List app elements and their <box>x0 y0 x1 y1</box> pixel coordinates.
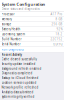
button[interactable]: Build Number <box>0 37 64 42</box>
button[interactable]: Memory <box>0 17 64 22</box>
staticText: Background refresh enabled <box>1 67 41 70</box>
staticText: Memory <box>1 18 11 21</box>
staticText: Build Number <box>1 38 21 41</box>
staticText: Location services updated <box>1 81 36 84</box>
staticText: Run Diagnostics <box>1 48 23 51</box>
staticText: Storage <box>1 23 11 26</box>
button[interactable]: Operating System <box>0 32 64 37</box>
staticText: A17 Pro <box>50 13 62 16</box>
button[interactable]: Processor <box>0 12 64 17</box>
button[interactable]: Run Diagnostics <box>0 47 64 52</box>
staticText: System integrity verified <box>1 95 34 98</box>
staticText: Network profile refreshed <box>1 86 38 89</box>
staticText: 22C152 <box>50 38 62 41</box>
staticText: Diagnostics completed <box>1 71 32 75</box>
staticText: Recent Activity <box>1 53 21 56</box>
staticText: Cache cleared successfully <box>1 57 36 61</box>
staticText: Serial Number <box>1 43 20 46</box>
staticText: System Configuration <box>1 2 45 7</box>
staticText: 256 GB <box>51 23 62 26</box>
staticText: Analytics data submitted <box>1 90 33 94</box>
button[interactable]: Storage <box>0 22 64 27</box>
staticText: Security update installed <box>1 62 35 66</box>
staticText: 92% <box>56 28 62 31</box>
staticText: F2LX9Q <box>52 43 62 46</box>
staticText: Battery Health <box>1 28 20 31</box>
button[interactable]: Serial Number <box>0 42 64 47</box>
button[interactable]: Battery Health <box>0 27 64 32</box>
staticText: 8 GB <box>55 18 62 21</box>
staticText: Processor <box>1 13 14 16</box>
staticText: Device status and diagnostics <box>1 7 39 11</box>
staticText: 18.2 <box>55 33 62 36</box>
staticText: Backup to iCloud finished <box>1 76 38 80</box>
staticText: Operating System <box>1 33 24 36</box>
